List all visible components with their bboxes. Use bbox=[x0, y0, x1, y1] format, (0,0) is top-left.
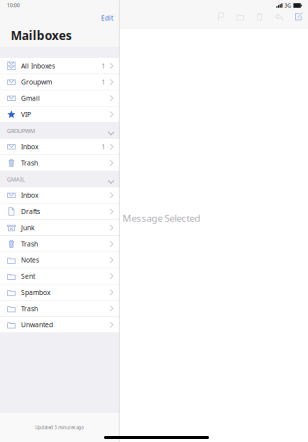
button[interactable]: Reply bbox=[269, 0, 289, 28]
staticText: GROUPWM bbox=[7, 127, 35, 135]
staticText: Inbox bbox=[21, 191, 39, 200]
button[interactable]: Spambox bbox=[0, 284, 119, 301]
button[interactable]: Edit bbox=[101, 15, 119, 22]
button[interactable]: Gmail bbox=[0, 90, 119, 107]
staticText: 1 bbox=[101, 61, 105, 70]
staticText: Inbox bbox=[21, 142, 39, 151]
button[interactable]: Delete bbox=[250, 0, 269, 28]
staticText: Sent bbox=[21, 272, 35, 281]
button[interactable]: Trash bbox=[0, 236, 119, 252]
staticText: Junk bbox=[21, 223, 35, 232]
button[interactable]: VIP bbox=[0, 106, 119, 123]
button[interactable]: Groupwm bbox=[0, 74, 119, 90]
staticText: Trash bbox=[21, 239, 38, 248]
staticText: 1 bbox=[101, 142, 105, 151]
staticText: All Inboxes bbox=[21, 61, 55, 70]
button[interactable]: Notes bbox=[0, 252, 119, 268]
button[interactable]: Junk bbox=[0, 220, 119, 236]
staticText: Updated 3 minutes ago bbox=[35, 424, 84, 430]
button[interactable]: Inbox bbox=[0, 187, 119, 204]
staticText: Trash bbox=[21, 304, 38, 313]
staticText: Drafts bbox=[21, 207, 40, 216]
staticText: Spambox bbox=[21, 288, 51, 297]
staticText: Notes bbox=[21, 255, 39, 265]
staticText: No Message Selected bbox=[107, 211, 200, 225]
button[interactable]: GROUPWM bbox=[0, 123, 119, 139]
staticText: 10:00 bbox=[7, 2, 20, 9]
staticText: Gmail bbox=[21, 94, 40, 103]
button[interactable]: Sent bbox=[0, 268, 119, 284]
button[interactable]: Inbox bbox=[0, 139, 119, 155]
staticText: VIP bbox=[21, 110, 31, 119]
button[interactable]: Compose bbox=[289, 0, 308, 28]
button[interactable]: Drafts bbox=[0, 204, 119, 220]
staticText: Unwanted bbox=[21, 320, 53, 329]
button[interactable]: All Inboxes bbox=[0, 58, 119, 74]
staticText: Mailboxes bbox=[11, 27, 72, 43]
staticText: Groupwm bbox=[21, 77, 52, 87]
staticText: GMAIL bbox=[7, 175, 25, 183]
button[interactable]: Trash bbox=[0, 155, 119, 171]
staticText: Edit bbox=[101, 14, 113, 22]
staticText: 3G bbox=[284, 2, 291, 9]
staticText: 1 bbox=[101, 77, 105, 87]
staticText: Trash bbox=[21, 158, 38, 167]
button[interactable]: Trash bbox=[0, 301, 119, 317]
button[interactable]: Unwanted bbox=[0, 317, 119, 333]
button[interactable]: GMAIL bbox=[0, 171, 119, 187]
